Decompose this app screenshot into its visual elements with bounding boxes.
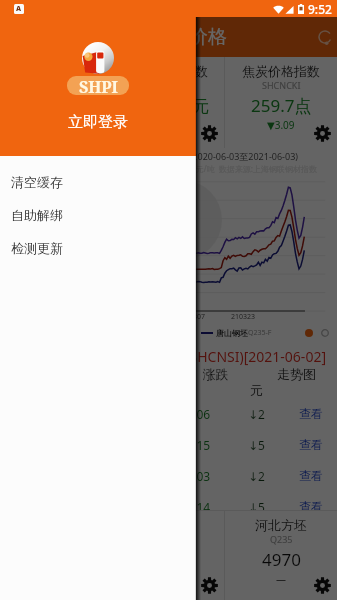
- button[interactable]: 检测更新: [0, 231, 196, 264]
- staticText: 查看: [285, 437, 337, 452]
- staticText: ↓2: [228, 406, 285, 422]
- button[interactable]: Settings: [87, 123, 107, 143]
- staticText: 4604.06元: [129, 94, 209, 117]
- staticText: 涨跌: [175, 366, 256, 382]
- button[interactable]: 立即登录: [58, 111, 138, 134]
- staticText: 4860.15: [148, 437, 228, 453]
- button[interactable]: Page 1: [305, 329, 313, 337]
- staticText: 唐山钢坯: [216, 328, 248, 338]
- staticText: 检测更新: [11, 240, 63, 256]
- staticText: 6128.14: [148, 499, 228, 515]
- staticText: 259.7点: [251, 94, 312, 117]
- staticText: SHCNBI: [39, 79, 73, 91]
- staticText: Q235: [270, 533, 293, 545]
- staticText: 河北方坯: [255, 517, 307, 533]
- staticText: 单位:元/吨 数据来源:上海钢联钢材指数: [0, 163, 317, 174]
- staticText: 元: [148, 382, 228, 398]
- button[interactable]: 焦炭价格指数: [225, 57, 337, 148]
- staticText: SHCNCKI: [262, 79, 301, 91]
- button[interactable]: Settings: [312, 575, 332, 595]
- button[interactable]: 钢材价格指数: [113, 57, 224, 148]
- button[interactable]: Settings: [199, 123, 219, 143]
- staticText: 钢材指数价格: [113, 25, 227, 49]
- staticText: ↓5: [228, 437, 285, 453]
- button[interactable]: Page 2: [321, 329, 329, 337]
- staticText: 200807: [181, 312, 206, 322]
- button[interactable]: 钢坯价格指数: [0, 57, 112, 148]
- button[interactable]: 河北方坯: [225, 511, 337, 600]
- staticText: 元: [228, 382, 285, 398]
- staticText: ▼3.09: [267, 118, 295, 132]
- button[interactable]: Refresh: [314, 26, 336, 48]
- staticText: 210323: [231, 312, 256, 322]
- button[interactable]: Settings: [199, 575, 219, 595]
- staticText: SHPI: [79, 76, 118, 95]
- staticText: A: [16, 4, 22, 14]
- staticText: 走势图: [256, 366, 337, 382]
- staticText: 清空缓存: [11, 174, 63, 190]
- staticText: 上海钢材价格指数(SHCNSI)[2021-06-02]: [0, 347, 326, 366]
- staticText: 查看: [285, 499, 337, 514]
- button[interactable]: 自助解绑: [0, 198, 196, 231]
- staticText: 4980.2元: [21, 94, 92, 117]
- staticText: 查看: [285, 468, 337, 483]
- staticText: 焦炭价格指数: [242, 63, 320, 79]
- staticText: ↓2: [228, 468, 285, 484]
- staticText: 钢材价格指数走势图(2020-06-03至2021-06-03): [0, 150, 298, 162]
- staticText: 9:52: [308, 1, 332, 17]
- staticText: Q235-F: [248, 328, 272, 338]
- staticText: 5178.03: [148, 468, 228, 484]
- staticText: ▼2.15: [42, 118, 70, 132]
- button[interactable]: 线材: [0, 429, 337, 460]
- staticText: 4970: [262, 548, 301, 571]
- button[interactable]: 冷轧板卷: [0, 491, 337, 522]
- button[interactable]: Settings: [312, 123, 332, 143]
- button[interactable]: 螺纹钢: [0, 398, 337, 429]
- staticText: 查看: [285, 406, 337, 421]
- button[interactable]: 热轧板卷: [0, 460, 337, 491]
- staticText: —: [276, 572, 286, 586]
- staticText: ↓5: [228, 499, 285, 515]
- staticText: 自助解绑: [11, 207, 63, 223]
- staticText: 钢材价格指数: [130, 63, 208, 79]
- button[interactable]: 清空缓存: [0, 165, 196, 198]
- staticText: 4604.06: [148, 406, 228, 422]
- button[interactable]: 唐山钢坯: [113, 511, 224, 600]
- staticText: 钢坯价格指数: [17, 63, 95, 79]
